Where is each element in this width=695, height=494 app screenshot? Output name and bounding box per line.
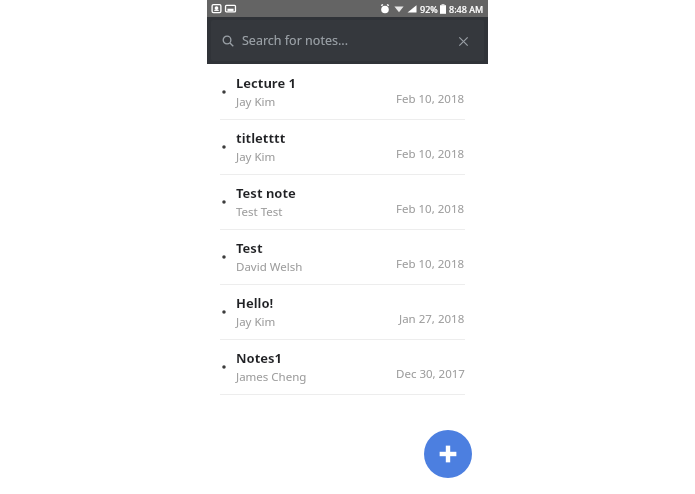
staticText: Search for notes...	[242, 32, 348, 49]
staticText: James Cheng	[236, 369, 307, 385]
staticText: Test Test	[236, 204, 283, 220]
button[interactable]: titletttt	[207, 120, 488, 175]
button[interactable]: Notes1	[207, 340, 488, 395]
button[interactable]: Test note	[207, 175, 488, 230]
staticText: Hello!	[236, 294, 274, 312]
staticText: Notes1	[236, 349, 283, 367]
staticText: Feb 10, 2018	[396, 256, 465, 272]
staticText: Lecture 1	[236, 74, 296, 92]
button[interactable]: Test	[207, 230, 488, 285]
button[interactable]: Search for notes...	[211, 20, 484, 61]
staticText: Jay Kim	[236, 94, 276, 110]
staticText: Jan 27, 2018	[399, 311, 465, 327]
button[interactable]: Add note	[424, 430, 472, 478]
staticText: Feb 10, 2018	[396, 146, 465, 162]
staticText: Test	[236, 239, 263, 257]
button[interactable]: Lecture 1	[207, 65, 488, 120]
staticText: Dec 30, 2017	[396, 366, 465, 382]
button[interactable]: Clear search	[453, 31, 473, 51]
staticText: Test note	[236, 184, 296, 202]
staticText: Jay Kim	[236, 149, 276, 165]
staticText: titletttt	[236, 129, 286, 147]
staticText: 92%	[420, 3, 438, 15]
staticText: Feb 10, 2018	[396, 201, 465, 217]
button[interactable]: Hello!	[207, 285, 488, 340]
staticText: David Welsh	[236, 259, 303, 275]
staticText: Feb 10, 2018	[396, 91, 465, 107]
staticText: Jay Kim	[236, 314, 276, 330]
staticText: 8:48 AM	[449, 3, 484, 15]
